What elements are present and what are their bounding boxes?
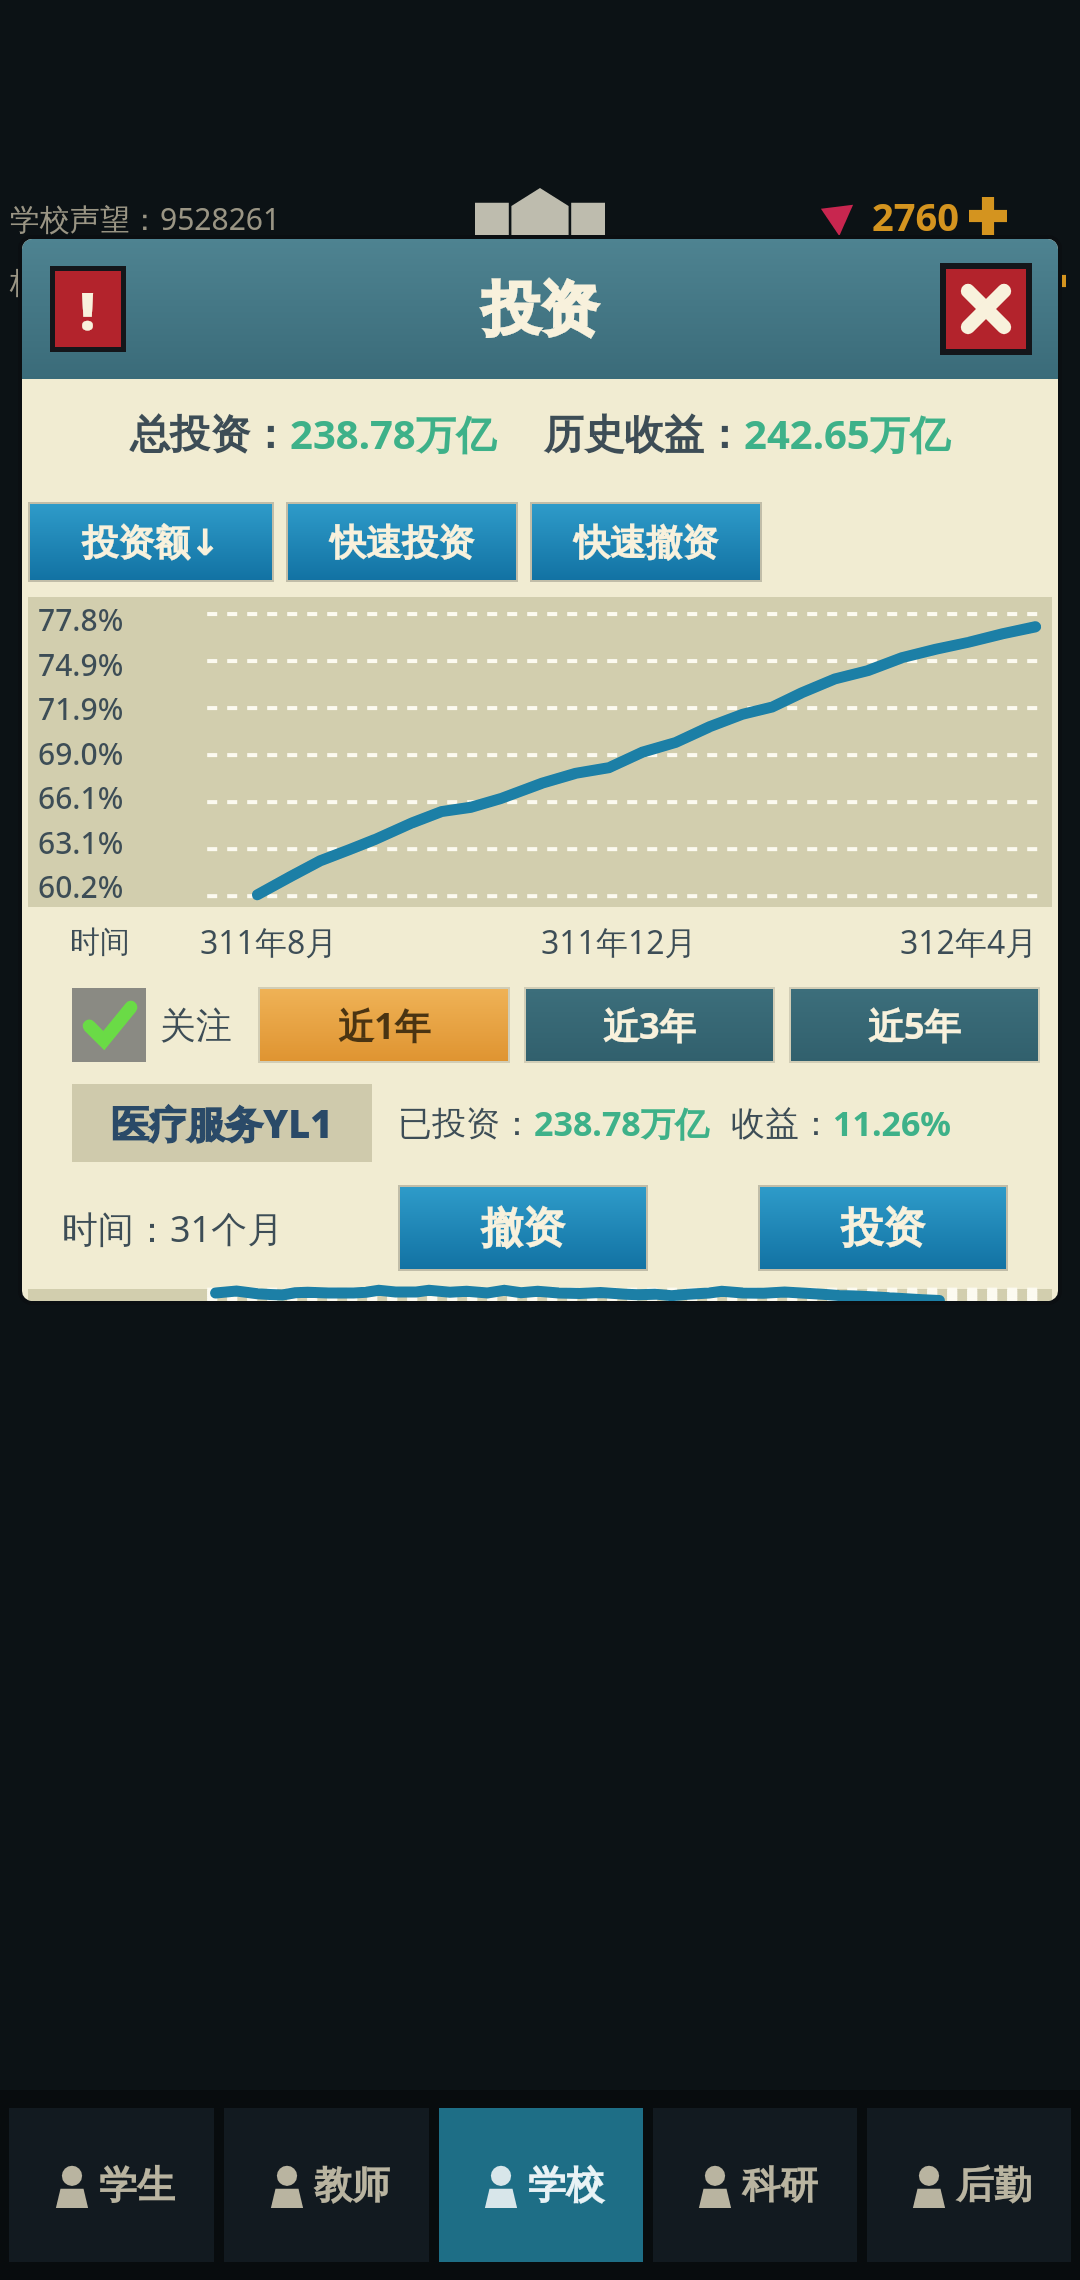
button[interactable]: 投资额↓ bbox=[28, 502, 274, 582]
button[interactable]: 科研 bbox=[653, 2108, 857, 2262]
staticText: 历史收益： bbox=[544, 409, 744, 459]
staticText: 后勤 bbox=[956, 2161, 1032, 2209]
button[interactable]: 关注 bbox=[72, 988, 232, 1062]
staticText: 312年4月 bbox=[900, 920, 1038, 964]
staticText: 投资 bbox=[841, 1202, 925, 1255]
staticText: 学生 bbox=[99, 2161, 175, 2209]
button[interactable]: 投资 bbox=[758, 1185, 1008, 1271]
staticText: 238.78万亿 bbox=[534, 1100, 709, 1146]
button[interactable]: 学校 bbox=[439, 2108, 643, 2262]
staticText: 近5年 bbox=[868, 1001, 961, 1050]
button[interactable]: Close bbox=[940, 263, 1032, 355]
button[interactable]: 教师 bbox=[224, 2108, 429, 2262]
staticText: 2760 bbox=[872, 190, 959, 242]
staticText: 60.2% bbox=[38, 866, 124, 907]
button[interactable]: 撤资 bbox=[398, 1185, 648, 1271]
staticText: 66.1% bbox=[38, 777, 124, 818]
staticText: 时间：31个月 bbox=[62, 1204, 284, 1253]
staticText: 74.9% bbox=[38, 644, 124, 685]
staticText: ! bbox=[80, 274, 96, 345]
button[interactable]: Alert bbox=[50, 266, 126, 352]
button[interactable]: 快速撤资 bbox=[530, 502, 762, 582]
staticText: 311年12月 bbox=[541, 920, 697, 964]
staticText: 快速投资 bbox=[330, 520, 474, 565]
button[interactable]: 后勤 bbox=[867, 2108, 1071, 2262]
button[interactable]: 学生 bbox=[9, 2108, 214, 2262]
staticText: 63.1% bbox=[38, 822, 124, 863]
button[interactable]: 近3年 bbox=[524, 987, 775, 1063]
staticText: 1.44万亿 bbox=[874, 256, 1018, 305]
staticText: 学校 bbox=[528, 2161, 604, 2209]
staticText: 近3年 bbox=[603, 1001, 696, 1050]
staticText: 关注 bbox=[160, 1003, 232, 1048]
staticText: 投资 bbox=[482, 273, 598, 346]
button[interactable]: 快速投资 bbox=[286, 502, 518, 582]
staticText: 校长能力：96 bbox=[10, 261, 195, 302]
staticText: 已投资： bbox=[398, 1102, 534, 1145]
staticText: 11.26% bbox=[833, 1100, 952, 1146]
staticText: 71.9% bbox=[38, 688, 124, 729]
button[interactable]: 近5年 bbox=[789, 987, 1040, 1063]
staticText: 学校声望：9528261 bbox=[10, 198, 281, 239]
staticText: 科研 bbox=[742, 2161, 818, 2209]
staticText: 桃之大学 bbox=[480, 270, 600, 308]
staticText: 近1年 bbox=[338, 1001, 431, 1050]
staticText: 医疗服务YL1 bbox=[111, 1097, 333, 1149]
staticText: 教师 bbox=[314, 2161, 390, 2209]
staticText: 238.78万亿 bbox=[290, 406, 496, 461]
staticText: Lv.22 bbox=[622, 228, 699, 272]
staticText: 311年8月 bbox=[200, 920, 338, 964]
staticText: 收益： bbox=[731, 1102, 833, 1145]
staticText: 69.0% bbox=[38, 733, 124, 774]
staticText: 242.65万亿 bbox=[744, 406, 950, 461]
staticText: 时间 bbox=[70, 923, 130, 961]
staticText: 投资额↓ bbox=[82, 520, 221, 565]
staticText: 总投资： bbox=[130, 409, 290, 459]
staticText: 快速撤资 bbox=[574, 520, 718, 565]
button[interactable]: 近1年 bbox=[258, 987, 510, 1063]
staticText: 撤资 bbox=[481, 1202, 565, 1255]
staticText: 77.8% bbox=[38, 599, 124, 640]
